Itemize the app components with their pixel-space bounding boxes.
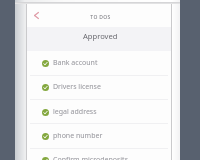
staticText: Approved bbox=[83, 31, 118, 41]
staticText: legal address bbox=[53, 107, 97, 117]
button[interactable]: Confirm microdeposits bbox=[27, 148, 171, 160]
staticText: TO DOS bbox=[90, 14, 111, 21]
staticText: Bank account bbox=[53, 58, 98, 68]
button[interactable]: phone number bbox=[27, 124, 171, 148]
button[interactable]: Bank account bbox=[27, 51, 171, 75]
button[interactable]: Drivers license bbox=[27, 75, 171, 99]
staticText: phone number bbox=[53, 131, 103, 141]
button[interactable]: legal address bbox=[27, 100, 171, 124]
staticText: Confirm microdeposits bbox=[53, 155, 128, 160]
staticText: Drivers license bbox=[53, 82, 101, 92]
button[interactable]: Back bbox=[29, 8, 44, 23]
